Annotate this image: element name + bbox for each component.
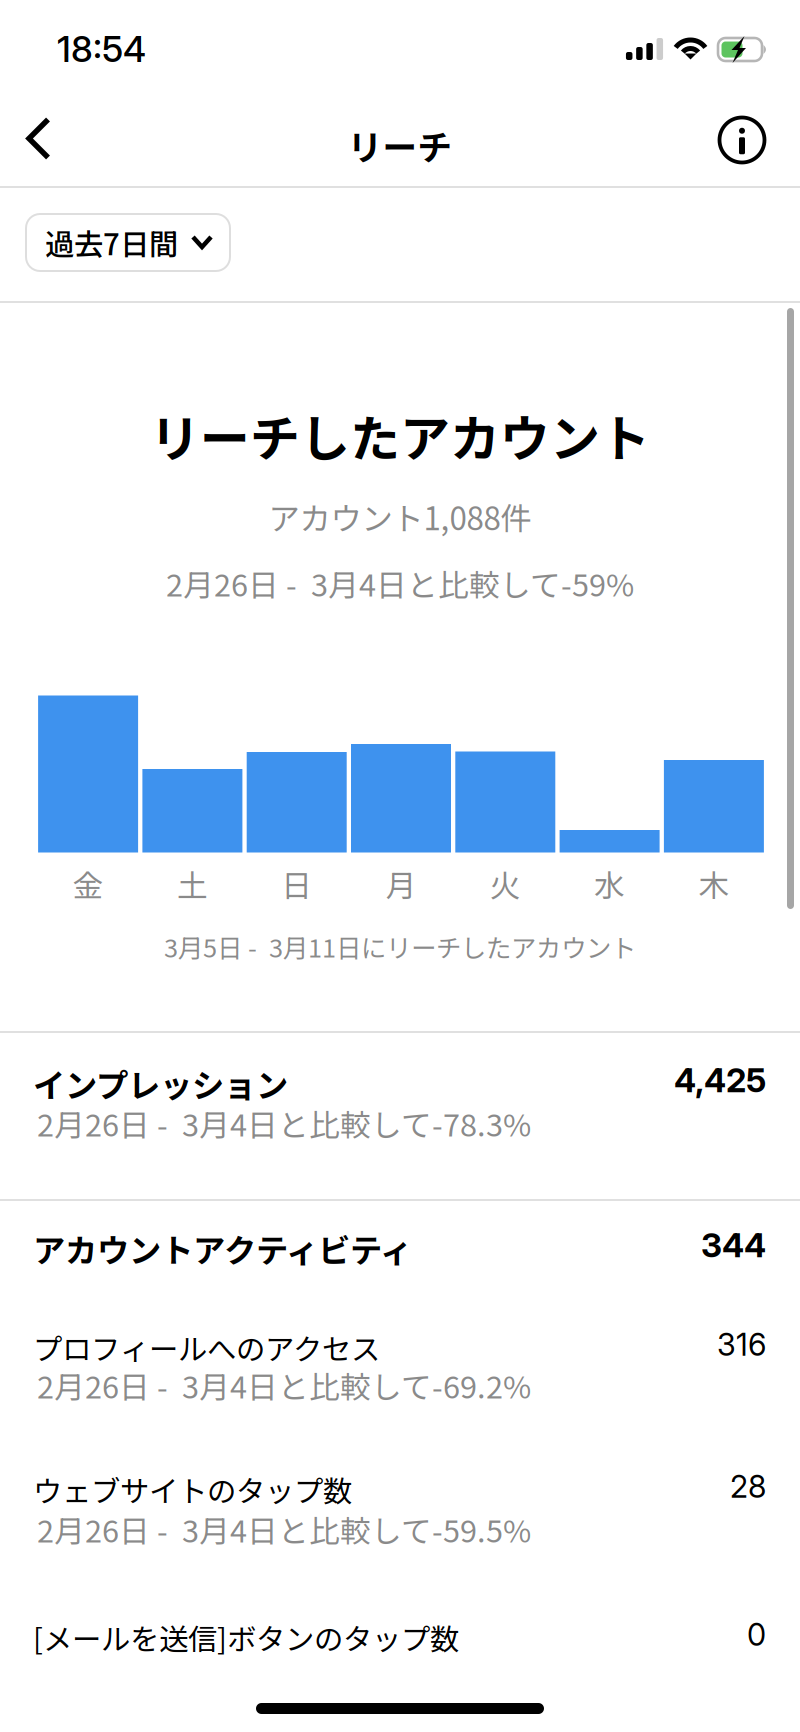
staticText: リーチしたアカウント (150, 399, 650, 471)
staticText: 4,425 (674, 1060, 766, 1100)
staticText: リーチ (347, 120, 452, 170)
staticText: 月 (385, 861, 416, 906)
staticText: [メールを送信]ボタンのタップ数 (33, 1616, 459, 1658)
button[interactable]: アカウントアクティビティ (0, 1201, 800, 1299)
staticText: 0 (747, 1616, 766, 1653)
staticText: 3月5日 - 3月11日にリーチしたアカウント (164, 928, 636, 965)
button[interactable]: プロフィールへのアクセス (0, 1299, 800, 1441)
staticText: 土 (177, 861, 208, 906)
staticText: アカウント1,088件 (268, 494, 531, 539)
staticText: 2月26日 - 3月4日と比較して-59.5% (37, 1507, 531, 1551)
button[interactable]: Information (700, 94, 800, 186)
button[interactable]: 過去7日間 (26, 214, 230, 271)
button[interactable]: インプレッション (0, 1033, 800, 1199)
staticText: 火 (490, 861, 521, 906)
staticText: 28 (730, 1468, 766, 1505)
staticText: プロフィールへのアクセス (33, 1326, 380, 1368)
staticText: インプレッション (33, 1060, 288, 1107)
staticText: 木 (698, 861, 729, 906)
button[interactable]: ウェブサイトのタップ数 (0, 1441, 800, 1583)
staticText: ウェブサイトのタップ数 (33, 1468, 352, 1510)
staticText: アカウントアクティビティ (33, 1225, 412, 1272)
staticText: 2月26日 - 3月4日と比較して-59% (166, 561, 634, 605)
button[interactable]: Back (0, 0, 82, 92)
staticText: 18:54 (57, 27, 146, 71)
staticText: 316 (717, 1326, 766, 1363)
staticText: 2月26日 - 3月4日と比較して-78.3% (37, 1101, 531, 1145)
staticText: 水 (594, 861, 625, 906)
staticText: 344 (701, 1225, 766, 1265)
staticText: 日 (281, 861, 312, 906)
button[interactable]: [メールを送信]ボタンのタップ数 (0, 1583, 800, 1663)
staticText: 2月26日 - 3月4日と比較して-69.2% (37, 1363, 531, 1407)
staticText: 過去7日間 (45, 221, 178, 264)
staticText: 金 (73, 861, 104, 906)
